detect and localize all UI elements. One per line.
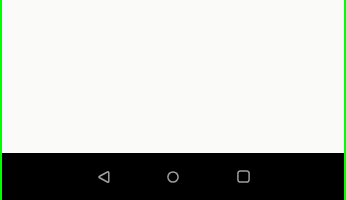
- button[interactable]: Home: [138, 153, 208, 200]
- button[interactable]: Back: [68, 153, 138, 200]
- button[interactable]: Recents: [208, 153, 278, 200]
